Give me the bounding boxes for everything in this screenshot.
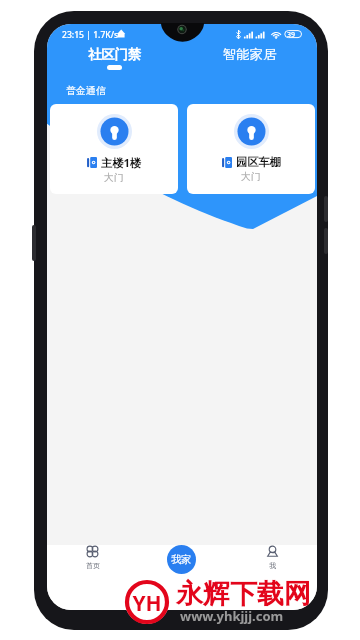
button[interactable]: 园区车棚 (187, 104, 315, 194)
button[interactable]: 主楼1楼 (50, 104, 178, 194)
staticText: 智能家居 (223, 46, 277, 63)
staticText: 39 (287, 30, 296, 40)
button[interactable]: 我家 (167, 545, 196, 574)
staticText: 主楼1楼 (101, 155, 141, 170)
button[interactable]: 我 (250, 546, 295, 576)
staticText: 大门 (241, 171, 261, 183)
staticText: 我家 (171, 553, 192, 566)
staticText: 园区车棚 (236, 155, 281, 169)
staticText: 普金通信 (66, 84, 106, 96)
staticText: 永辉下载网 (176, 577, 311, 611)
staticText: 我 (269, 561, 276, 570)
button[interactable]: 社区门禁 (47, 24, 182, 72)
button[interactable]: 首页 (70, 546, 115, 576)
staticText: 社区门禁 (88, 46, 142, 63)
staticText: 首页 (86, 561, 100, 570)
staticText: 23:15 | 1.7K/s (62, 29, 119, 41)
staticText: YH (127, 589, 167, 618)
button[interactable]: 智能家居 (182, 24, 317, 72)
staticText: 大门 (104, 172, 124, 184)
staticText: www.yhkjjj.com (180, 607, 284, 625)
